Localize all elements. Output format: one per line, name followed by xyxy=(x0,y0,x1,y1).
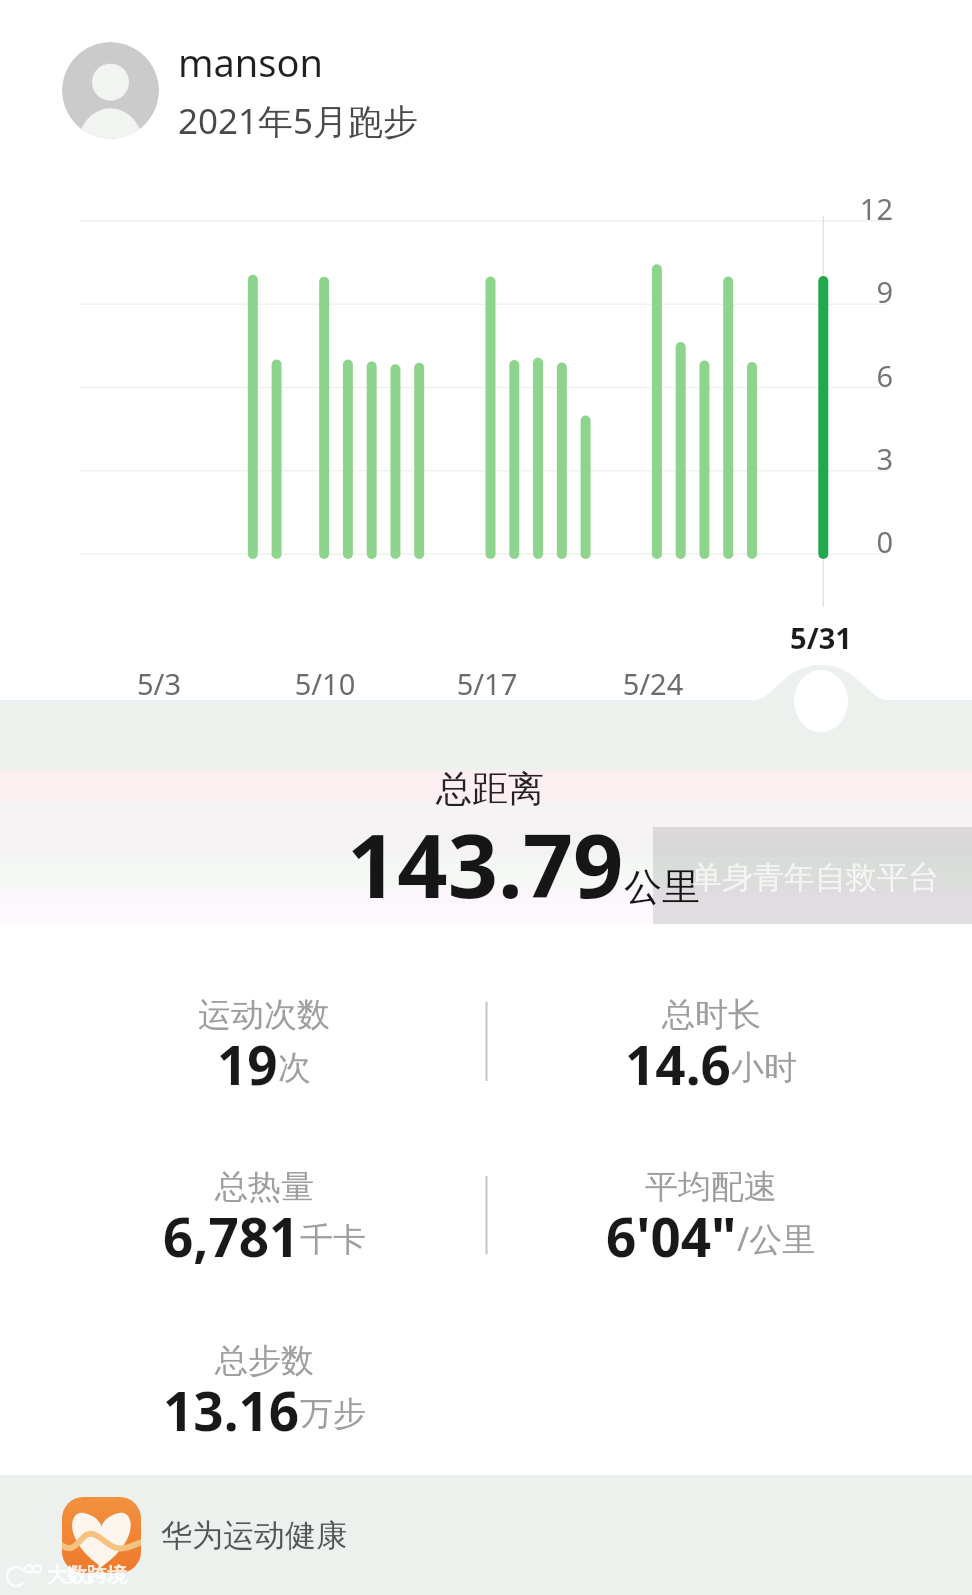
staticText: 万步 xyxy=(300,1393,366,1435)
staticText: 总步数 xyxy=(215,1340,314,1382)
staticText: 0 xyxy=(833,522,893,561)
staticText: 14.6 xyxy=(625,1028,731,1096)
staticText: 9 xyxy=(833,272,893,311)
staticText: 6 xyxy=(833,356,893,395)
button[interactable]: 总时长 xyxy=(491,986,931,1096)
staticText: 6,781 xyxy=(163,1200,300,1268)
staticText: 6'04" xyxy=(606,1200,737,1268)
staticText: 总时长 xyxy=(662,994,761,1036)
staticText: 13.16 xyxy=(163,1374,300,1442)
staticText: 运动次数 xyxy=(198,994,330,1036)
staticText: 5/24 xyxy=(573,664,733,703)
staticText: 总距离 xyxy=(190,766,790,811)
staticText: 12 xyxy=(833,189,893,228)
other: Huawei Health app xyxy=(62,1497,141,1573)
staticText: /公里 xyxy=(737,1216,816,1261)
button[interactable]: 总步数 xyxy=(44,1332,484,1442)
staticText: 总热量 xyxy=(215,1166,314,1208)
staticText: manson xyxy=(178,36,324,88)
staticText: 单身青年自救平台 xyxy=(691,858,939,897)
staticText: 大数跨境 xyxy=(47,1563,127,1588)
button[interactable]: Profile photo xyxy=(0,0,972,180)
button[interactable]: 总热量 xyxy=(44,1158,484,1268)
staticText: 小时 xyxy=(731,1047,797,1089)
staticText: 2021年5月跑步 xyxy=(178,97,419,145)
staticText: 143.79 xyxy=(347,804,624,924)
staticText: 5/17 xyxy=(407,664,567,703)
staticText: 5/10 xyxy=(245,664,405,703)
staticText: 3 xyxy=(833,439,893,478)
button[interactable]: Huawei Health app xyxy=(0,1475,972,1595)
staticText: 次 xyxy=(278,1047,311,1089)
staticText: 公里 xyxy=(624,863,700,911)
button[interactable]: 运动次数 xyxy=(44,986,484,1096)
staticText: 平均配速 xyxy=(645,1166,777,1208)
button[interactable]: 平均配速 xyxy=(491,1158,931,1268)
staticText: 千卡 xyxy=(300,1219,366,1261)
staticText: 华为运动健康 xyxy=(161,1516,347,1555)
staticText: 5/3 xyxy=(79,664,239,703)
button[interactable]: Profile photo xyxy=(62,42,159,139)
staticText: 5/31 xyxy=(741,618,901,657)
staticText: 19 xyxy=(217,1028,278,1096)
